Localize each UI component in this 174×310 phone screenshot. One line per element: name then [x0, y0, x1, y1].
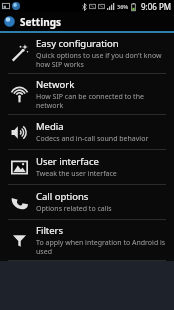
- button[interactable]: Easy configuration: [0, 33, 174, 73]
- button[interactable]: Media: [0, 115, 174, 149]
- other: Easy configuration: [11, 45, 28, 62]
- staticText: Media: [36, 120, 64, 133]
- button[interactable]: Settings: [0, 12, 174, 31]
- staticText: How SIP can be connected to the network: [36, 92, 168, 110]
- staticText: Codecs and in-call sound behavior: [36, 134, 149, 144]
- other: Call options: [11, 194, 28, 211]
- staticText: To apply when integration to Android is …: [36, 238, 168, 256]
- staticText: Settings: [20, 15, 61, 29]
- other: Settings: [4, 16, 15, 27]
- staticText: Filters: [36, 224, 64, 237]
- staticText: 36%: [117, 3, 129, 10]
- other: Filters: [11, 232, 28, 249]
- button[interactable]: Call options: [0, 185, 174, 219]
- other: User interface: [11, 159, 28, 176]
- other: Media: [11, 124, 28, 141]
- staticText: Options related to calls: [36, 204, 112, 214]
- other: Network: [11, 86, 28, 103]
- staticText: Tweak the user interface: [36, 169, 117, 179]
- staticText: Call options: [36, 190, 89, 203]
- button[interactable]: User interface: [0, 150, 174, 184]
- button[interactable]: Filters: [0, 220, 174, 260]
- staticText: Network: [36, 78, 75, 91]
- staticText: Easy configuration: [36, 37, 119, 50]
- staticText: Quick options to use if you don't know h…: [36, 51, 168, 69]
- button[interactable]: Network: [0, 74, 174, 114]
- staticText: 9:06 PM: [141, 1, 172, 12]
- staticText: User interface: [36, 155, 99, 168]
